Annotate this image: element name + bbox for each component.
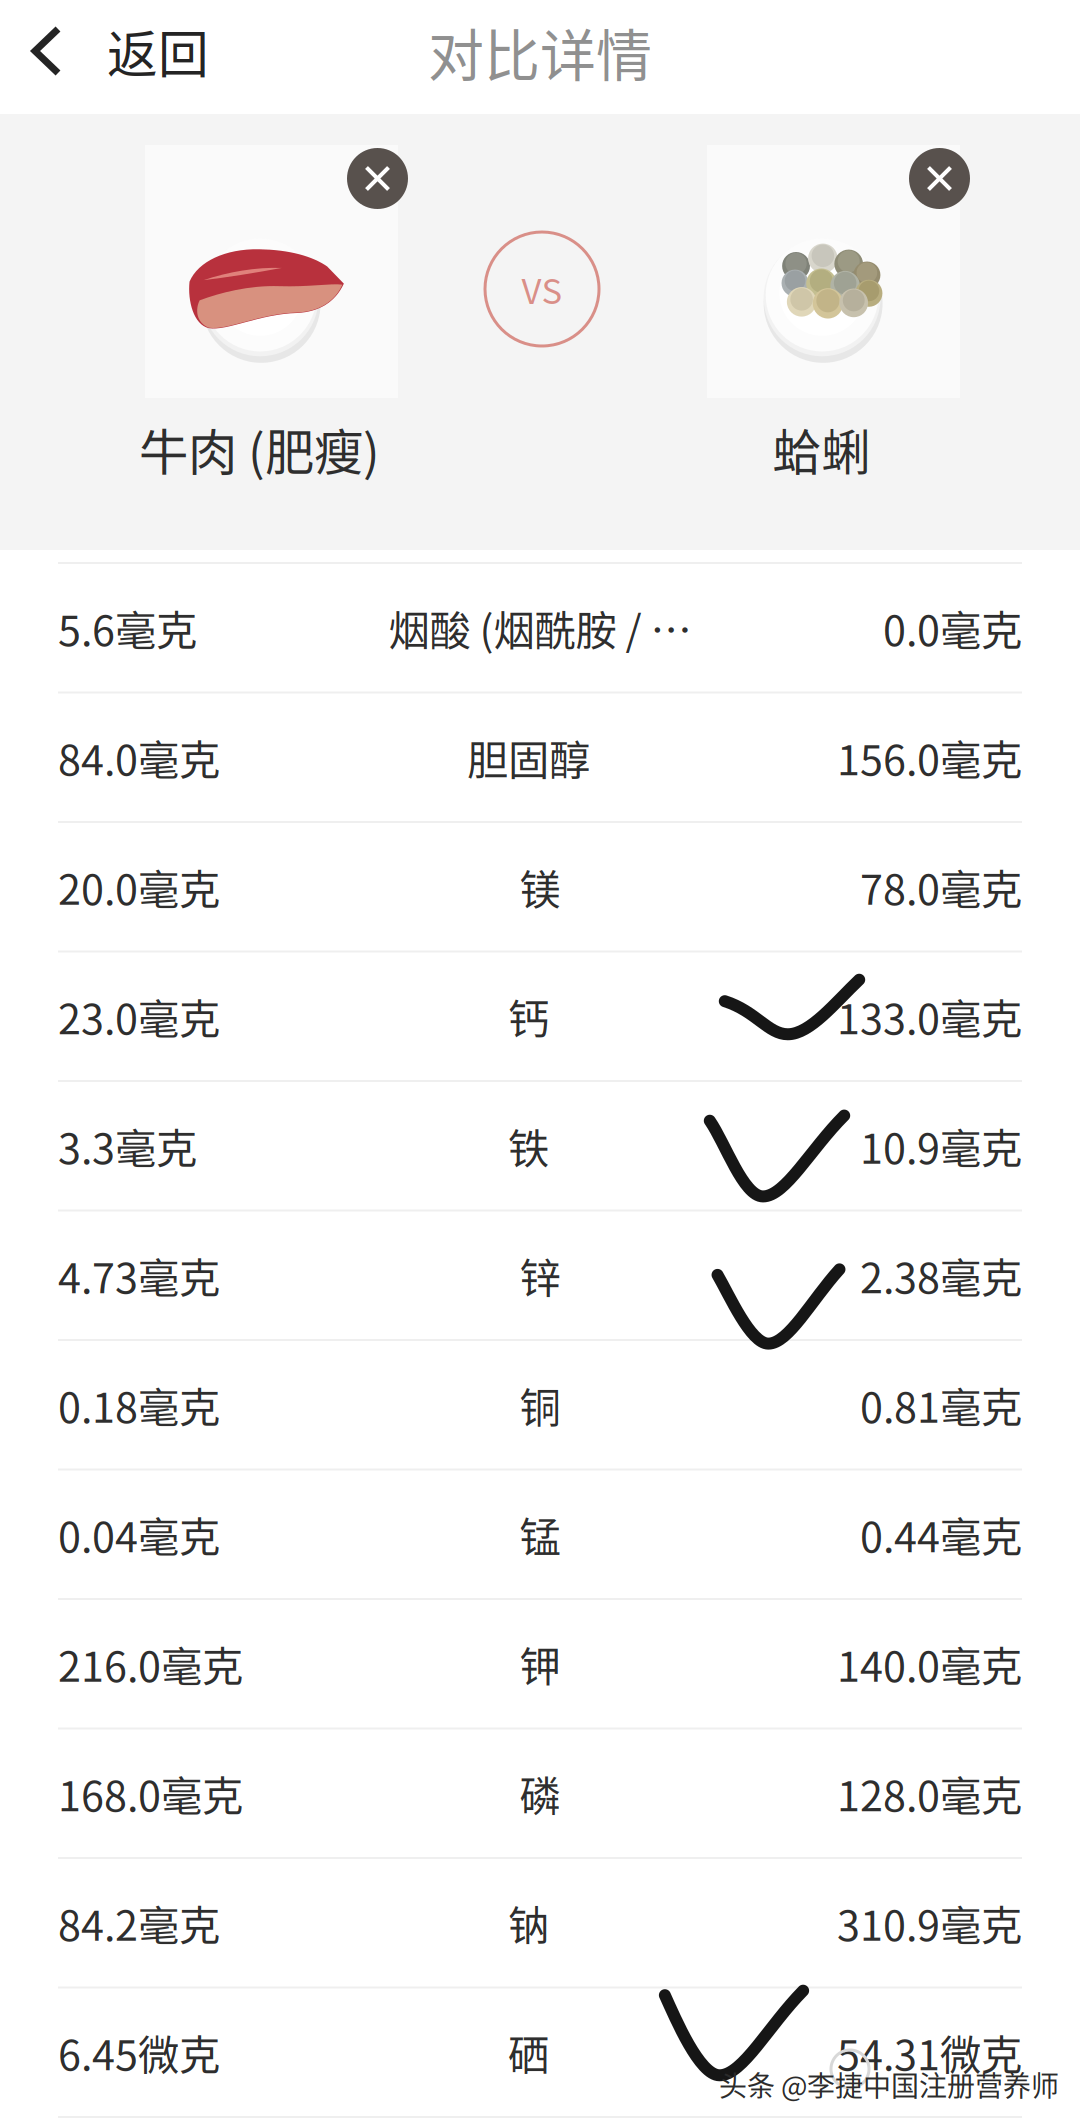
staticText: 0.0毫克: [883, 598, 1022, 658]
staticText: 140.0毫克: [837, 1634, 1022, 1694]
staticText: 156.0毫克: [837, 727, 1022, 787]
staticText: 钠: [508, 1893, 549, 1953]
staticText: 0.44毫克: [860, 1504, 1022, 1564]
staticText: 铁: [508, 1116, 549, 1176]
staticText: 牛肉 (肥瘦): [139, 413, 380, 484]
button[interactable]: 移除蛤蜊: [909, 148, 970, 209]
staticText: 钙: [508, 986, 549, 1046]
staticText: 胆固醇: [467, 727, 590, 787]
staticText: 20.0毫克: [58, 857, 220, 917]
staticText: 5.6毫克: [58, 598, 197, 658]
staticText: VS: [521, 264, 562, 314]
staticText: 对比详情: [428, 11, 652, 92]
staticText: 硒: [508, 2022, 549, 2082]
staticText: 0.04毫克: [58, 1504, 220, 1564]
staticText: 返回: [107, 14, 209, 88]
staticText: 310.9毫克: [837, 1893, 1022, 1953]
staticText: 216.0毫克: [58, 1634, 243, 1694]
staticText: 0.18毫克: [58, 1375, 220, 1435]
button[interactable]: 移除牛肉 (肥瘦): [347, 148, 408, 209]
staticText: 锰: [519, 1504, 560, 1564]
button[interactable]: 返回: [0, 0, 320, 114]
staticText: 磷: [519, 1763, 560, 1823]
staticText: 78.0毫克: [860, 857, 1022, 917]
staticText: 6.45微克: [58, 2022, 220, 2082]
staticText: 168.0毫克: [58, 1763, 243, 1823]
staticText: 128.0毫克: [837, 1763, 1022, 1823]
staticText: 4.73毫克: [58, 1245, 220, 1305]
staticText: 镁: [519, 857, 560, 917]
staticText: 锌: [519, 1245, 560, 1305]
staticText: 头条 @李捷中国注册营养师: [719, 2064, 1059, 2104]
staticText: 23.0毫克: [58, 986, 220, 1046]
staticText: 3.3毫克: [58, 1116, 197, 1176]
staticText: 54.31微克: [837, 2022, 1022, 2082]
staticText: 84.2毫克: [58, 1893, 220, 1953]
staticText: 10.9毫克: [860, 1116, 1022, 1176]
staticText: 0.81毫克: [860, 1375, 1022, 1435]
staticText: 2.38毫克: [860, 1245, 1022, 1305]
staticText: 铜: [519, 1375, 560, 1435]
staticText: 蛤蜊: [772, 413, 870, 484]
staticText: 133.0毫克: [837, 986, 1022, 1046]
staticText: 钾: [519, 1634, 560, 1694]
staticText: 烟酸 (烟酰胺 / …: [388, 598, 691, 658]
staticText: 84.0毫克: [58, 727, 220, 787]
